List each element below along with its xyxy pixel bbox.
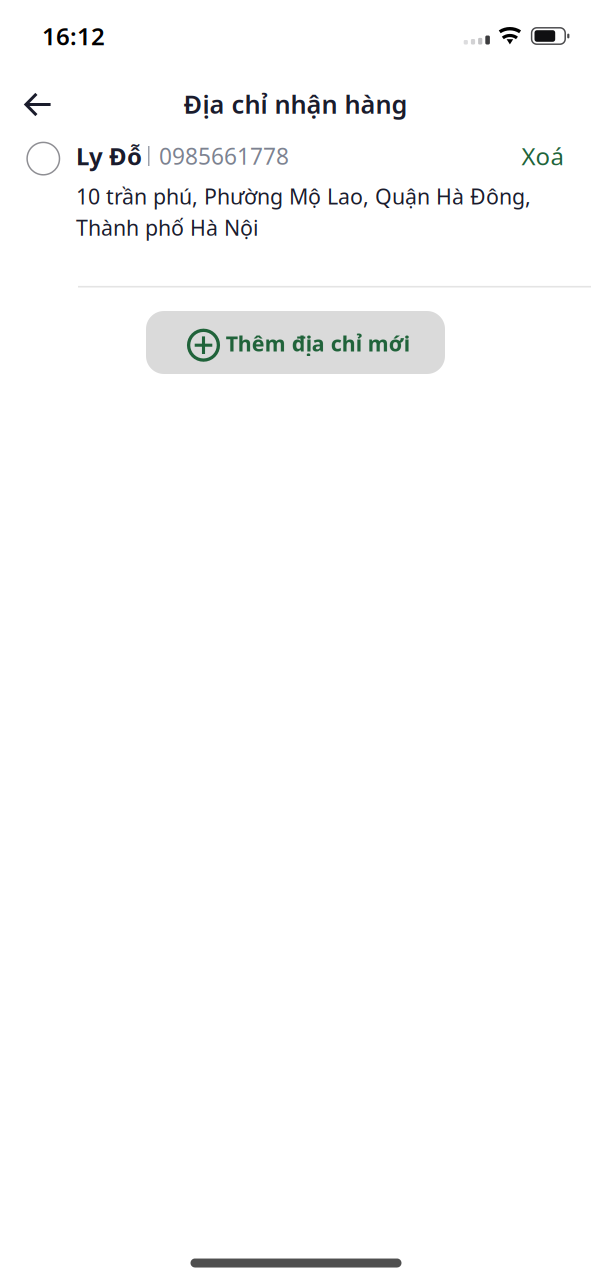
staticText: 10 trần phú, Phường Mộ Lao, Quận Hà Đông…	[76, 182, 531, 242]
button[interactable]: Back	[10, 81, 64, 127]
staticText: 0985661778	[159, 141, 289, 171]
button[interactable]: Ly Đỗ	[0, 130, 591, 252]
staticText: 16:12	[42, 20, 105, 52]
staticText: Địa chỉ nhận hàng	[183, 87, 407, 121]
button[interactable]: Xoá	[511, 138, 573, 174]
button[interactable]: Thêm địa chỉ mới	[146, 311, 445, 374]
staticText: Ly Đỗ	[76, 140, 142, 172]
staticText: Xoá	[521, 140, 563, 172]
staticText: Thêm địa chỉ mới	[226, 329, 410, 357]
